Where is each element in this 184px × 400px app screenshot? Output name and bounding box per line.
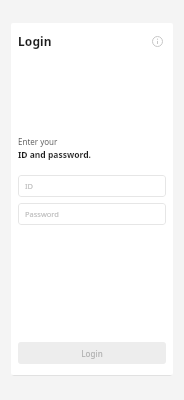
staticText: Enter your: [18, 136, 58, 147]
staticText: Password: [25, 209, 59, 219]
staticText: Login: [18, 33, 52, 49]
button[interactable]: ID: [18, 175, 166, 197]
staticText: Login: [81, 348, 103, 359]
staticText: ID: [25, 181, 34, 191]
button[interactable]: Password: [18, 203, 166, 225]
button[interactable]: Login: [18, 342, 166, 364]
staticText: ID and password.: [18, 149, 91, 161]
button[interactable]: Information: [148, 32, 166, 50]
